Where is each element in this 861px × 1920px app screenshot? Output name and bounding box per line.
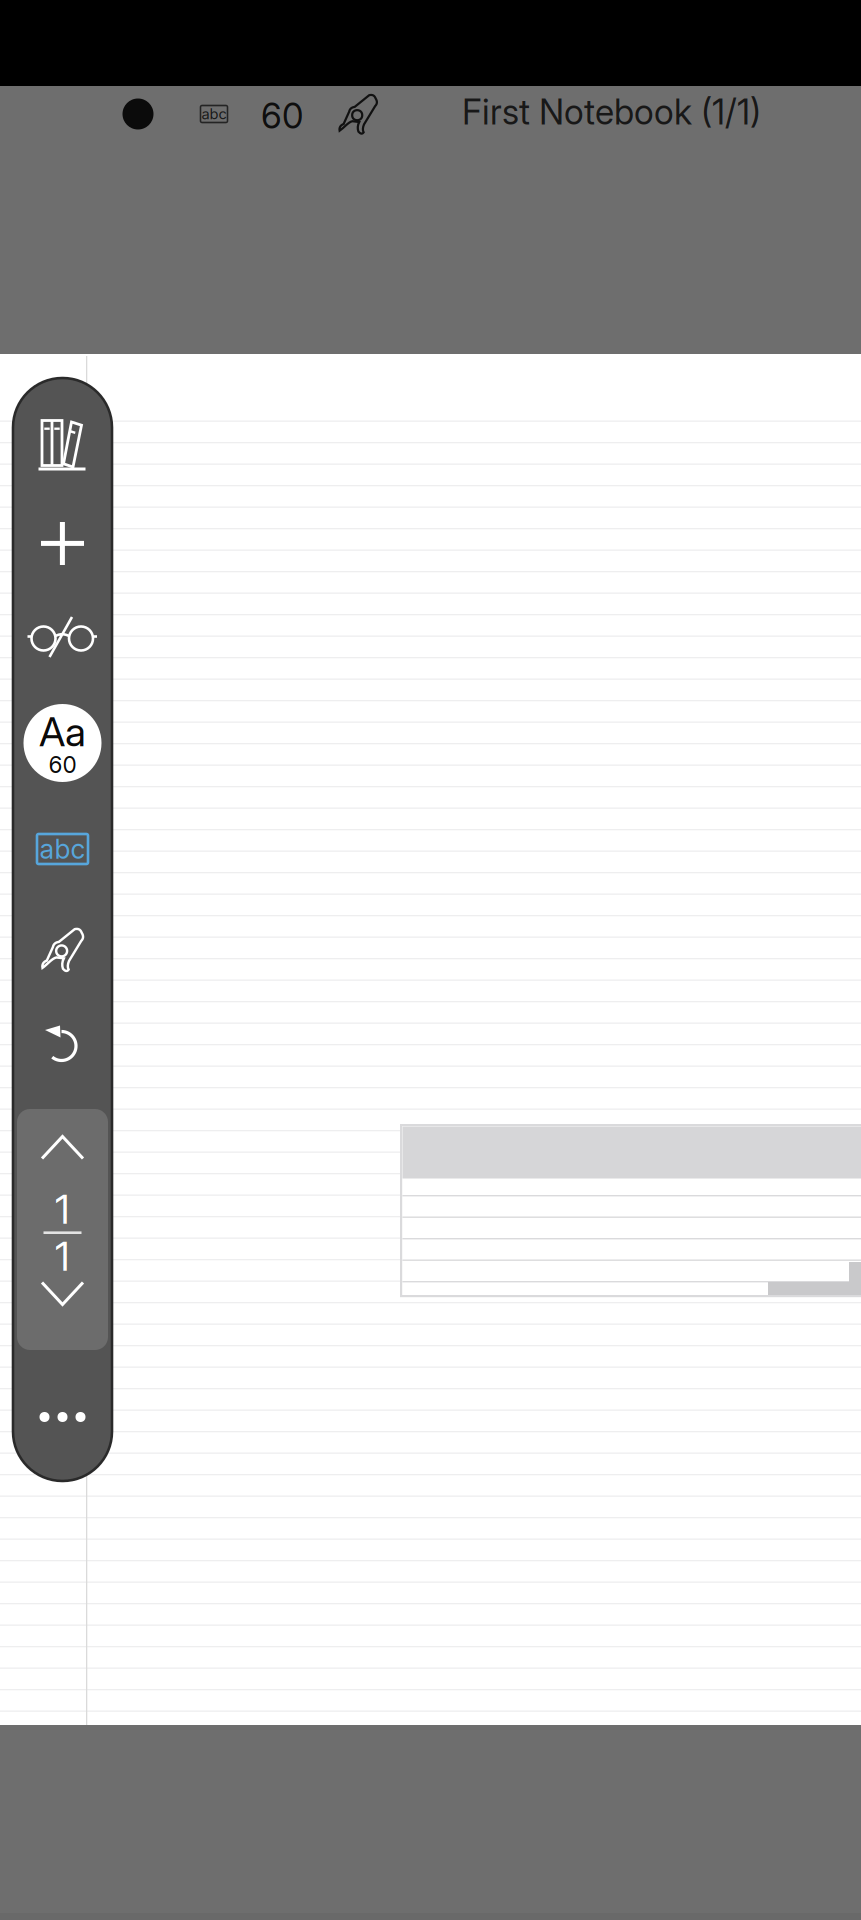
button[interactable]: Add page — [40, 521, 85, 566]
button[interactable]: Hide handwriting — [27, 615, 98, 661]
staticText: 1 — [55, 1185, 70, 1233]
staticText: Aa — [39, 708, 86, 756]
staticText: 60 — [48, 751, 76, 778]
staticText: 1 — [55, 1232, 70, 1280]
button[interactable]: Text recognition — [34, 829, 90, 869]
button[interactable]: Font size 60 — [23, 704, 101, 782]
staticText: abc — [201, 105, 226, 123]
button[interactable]: Library — [37, 418, 87, 471]
button[interactable]: More options — [39, 1411, 85, 1423]
staticText: First Notebook (1/1) — [462, 91, 761, 133]
staticText: 60 — [261, 95, 303, 137]
button[interactable]: Undo — [34, 1013, 90, 1065]
staticText: abc — [39, 833, 85, 865]
button[interactable]: Select — [327, 86, 389, 142]
button[interactable]: Next page — [40, 1281, 84, 1306]
button[interactable]: Text box tool — [186, 86, 242, 142]
button[interactable]: Pen colour — [109, 86, 167, 142]
button[interactable]: Previous page — [40, 1135, 84, 1160]
button[interactable]: Pointer — [40, 927, 85, 972]
button[interactable]: Pen size 60 — [251, 88, 313, 144]
